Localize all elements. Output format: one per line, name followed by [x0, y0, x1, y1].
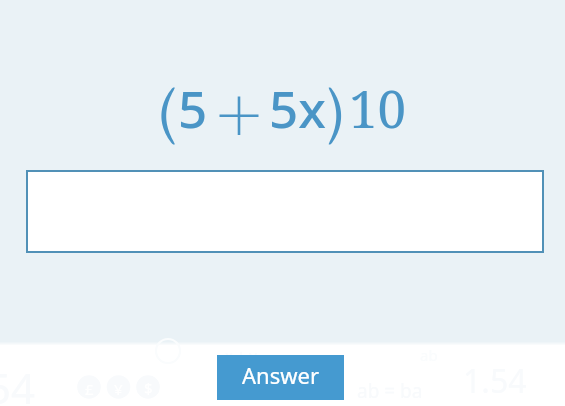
- staticText: 5: [178, 73, 208, 142]
- staticText: Answer: [242, 360, 319, 390]
- staticText: 10: [349, 73, 407, 142]
- button[interactable]: Answer: [217, 355, 344, 400]
- button[interactable]: Answer input field: [26, 170, 544, 253]
- staticText: 5x: [269, 73, 326, 142]
- staticText: x + y: [225, 345, 257, 365]
